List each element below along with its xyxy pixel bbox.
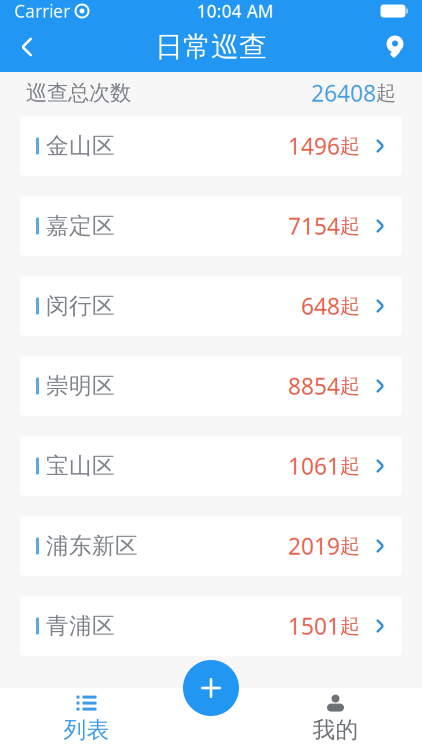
staticText: 8854 bbox=[288, 371, 340, 401]
staticText: 起 bbox=[340, 614, 360, 638]
button[interactable]: 返回 bbox=[0, 25, 54, 69]
staticText: 我的 bbox=[312, 716, 358, 744]
staticText: 崇明区 bbox=[46, 372, 115, 400]
button[interactable]: 青浦区 bbox=[20, 596, 402, 656]
staticText: 列表 bbox=[63, 716, 109, 744]
staticText: 1061 bbox=[288, 451, 340, 481]
staticText: 1496 bbox=[288, 131, 340, 161]
staticText: 10:04 AM bbox=[196, 0, 273, 22]
button[interactable]: 嘉定区 bbox=[20, 196, 402, 256]
button[interactable]: 新增 bbox=[183, 660, 239, 716]
staticText: 宝山区 bbox=[46, 452, 115, 480]
staticText: 日常巡查 bbox=[155, 30, 267, 64]
button[interactable]: 定位 bbox=[368, 25, 422, 69]
button[interactable]: 浦东新区 bbox=[20, 516, 402, 576]
staticText: 金山区 bbox=[46, 132, 115, 160]
staticText: 起 bbox=[340, 214, 360, 238]
staticText: 闵行区 bbox=[46, 292, 115, 320]
button[interactable]: 宝山区 bbox=[20, 436, 402, 496]
staticText: 起 bbox=[340, 294, 360, 318]
button[interactable]: 崇明区 bbox=[20, 356, 402, 416]
staticText: 1501 bbox=[288, 611, 340, 641]
staticText: Carrier bbox=[14, 0, 70, 22]
staticText: 浦东新区 bbox=[46, 532, 138, 560]
staticText: 26408 bbox=[311, 78, 376, 108]
button[interactable]: 列表 bbox=[0, 688, 173, 750]
staticText: 巡查总次数 bbox=[26, 80, 131, 106]
staticText: 648 bbox=[301, 291, 340, 321]
staticText: 起 bbox=[340, 134, 360, 158]
staticText: 青浦区 bbox=[46, 612, 115, 640]
staticText: 起 bbox=[340, 454, 360, 478]
button[interactable]: 我的 bbox=[249, 688, 422, 750]
staticText: 嘉定区 bbox=[46, 212, 115, 240]
button[interactable]: 金山区 bbox=[20, 116, 402, 176]
staticText: 起 bbox=[340, 534, 360, 558]
button[interactable]: 闵行区 bbox=[20, 276, 402, 336]
staticText: 起 bbox=[340, 374, 360, 398]
staticText: 2019 bbox=[288, 531, 340, 561]
staticText: 起 bbox=[376, 81, 396, 105]
staticText: 7154 bbox=[288, 211, 340, 241]
